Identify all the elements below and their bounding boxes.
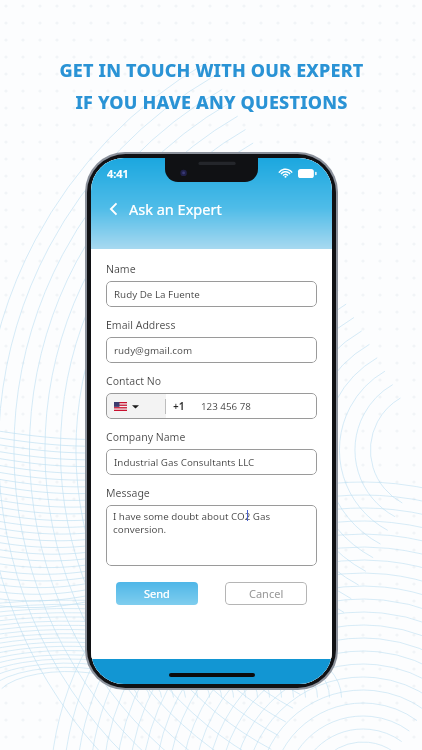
button[interactable]: Rudy De La Fuente <box>106 281 317 307</box>
staticText: Name <box>106 262 136 276</box>
button[interactable]: Cancel <box>225 582 307 605</box>
button[interactable]: rudy@gmail.com <box>106 337 317 363</box>
button[interactable]: Back <box>102 197 126 221</box>
staticText: Send <box>144 586 170 601</box>
button[interactable]: Send <box>116 582 198 605</box>
staticText: Contact No <box>106 374 162 388</box>
staticText: Rudy De La Fuente <box>114 288 200 301</box>
staticText: Message <box>106 486 150 500</box>
staticText: GET IN TOUCH WITH OUR EXPERT <box>59 58 364 83</box>
button[interactable]: Industrial Gas Consultants LLC <box>106 449 317 475</box>
staticText: Company Name <box>106 430 186 444</box>
staticText: 123 456 78 <box>201 400 251 413</box>
staticText: +1 <box>173 399 185 413</box>
staticText: I have some doubt about CO2 Gas conversi… <box>113 510 310 536</box>
staticText: 4:41 <box>107 166 129 181</box>
button[interactable]: I have some doubt about CO2 Gas conversi… <box>106 505 317 566</box>
button[interactable]: +1 <box>106 393 317 419</box>
staticText: Cancel <box>249 586 284 601</box>
staticText: rudy@gmail.com <box>114 344 193 357</box>
staticText: Email Address <box>106 318 176 332</box>
button[interactable] <box>106 393 166 419</box>
staticText: IF YOU HAVE ANY QUESTIONS <box>75 90 348 115</box>
staticText: Ask an Expert <box>129 199 222 219</box>
staticText: Industrial Gas Consultants LLC <box>114 456 255 469</box>
